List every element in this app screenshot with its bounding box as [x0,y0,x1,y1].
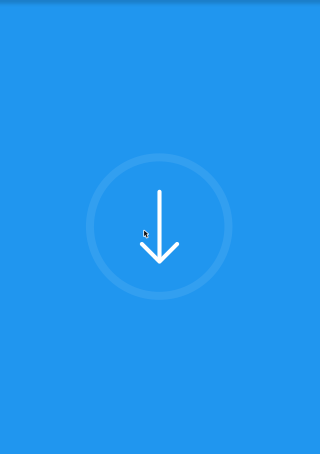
button[interactable]: Scroll down [86,153,232,300]
